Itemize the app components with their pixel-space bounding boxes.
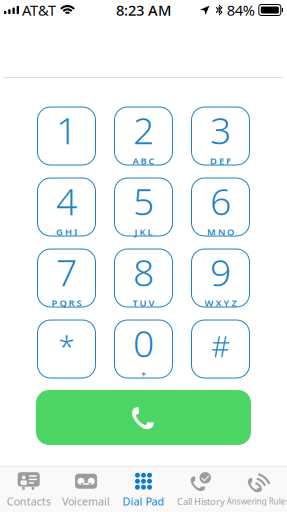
button[interactable]: 8 [114, 249, 172, 307]
staticText: A B C [132, 155, 154, 167]
staticText: 7 [56, 247, 77, 297]
staticText: # [211, 326, 230, 365]
button[interactable]: 0 [114, 320, 172, 378]
staticText [65, 155, 67, 167]
button[interactable]: * [37, 320, 95, 378]
staticText: 8:23 AM [116, 0, 171, 20]
staticText: Voicemail [62, 494, 110, 508]
button[interactable]: # [191, 320, 249, 378]
staticText: W X Y Z [204, 297, 236, 309]
button[interactable]: 5 [114, 178, 172, 236]
staticText: Contacts [7, 494, 51, 508]
staticText: 3 [210, 105, 231, 155]
staticText: G H I [56, 226, 77, 238]
staticText: AT&T [22, 0, 56, 20]
staticText: 2 [133, 105, 154, 155]
staticText: T U V [132, 297, 154, 309]
staticText: 6 [210, 176, 231, 226]
button[interactable]: Contacts [0, 467, 57, 512]
button[interactable]: Voicemail [57, 467, 115, 512]
staticText: P Q R S [51, 297, 81, 309]
staticText: * [58, 326, 74, 365]
button[interactable]: 7 [37, 249, 95, 307]
button[interactable]: Call [36, 390, 251, 445]
button[interactable]: 3 [191, 107, 249, 165]
button[interactable]: 2 [114, 107, 172, 165]
button[interactable]: 9 [191, 249, 249, 307]
staticText: 8 [133, 247, 154, 297]
staticText: M N O [207, 226, 234, 238]
button[interactable]: 4 [37, 178, 95, 236]
staticText: Call History [177, 495, 225, 507]
staticText [219, 365, 221, 378]
staticText: 5 [133, 176, 154, 226]
button[interactable]: 6 [191, 178, 249, 236]
staticText [65, 365, 67, 378]
button[interactable]: Answering Rules [230, 467, 287, 512]
staticText: D E F [210, 155, 231, 167]
staticText: 4 [56, 176, 77, 226]
button[interactable]: 1 [37, 107, 95, 165]
staticText: + [141, 368, 146, 380]
staticText: Answering Rules [227, 496, 287, 507]
button[interactable]: Dial Pad [115, 467, 172, 512]
staticText: Dial Pad [122, 494, 164, 508]
button[interactable]: Call History [172, 467, 230, 512]
staticText: J K L [134, 226, 152, 238]
staticText: 0 [133, 318, 154, 368]
staticText: 84% [227, 0, 255, 20]
staticText: 1 [56, 105, 77, 155]
staticText: 9 [210, 247, 231, 297]
